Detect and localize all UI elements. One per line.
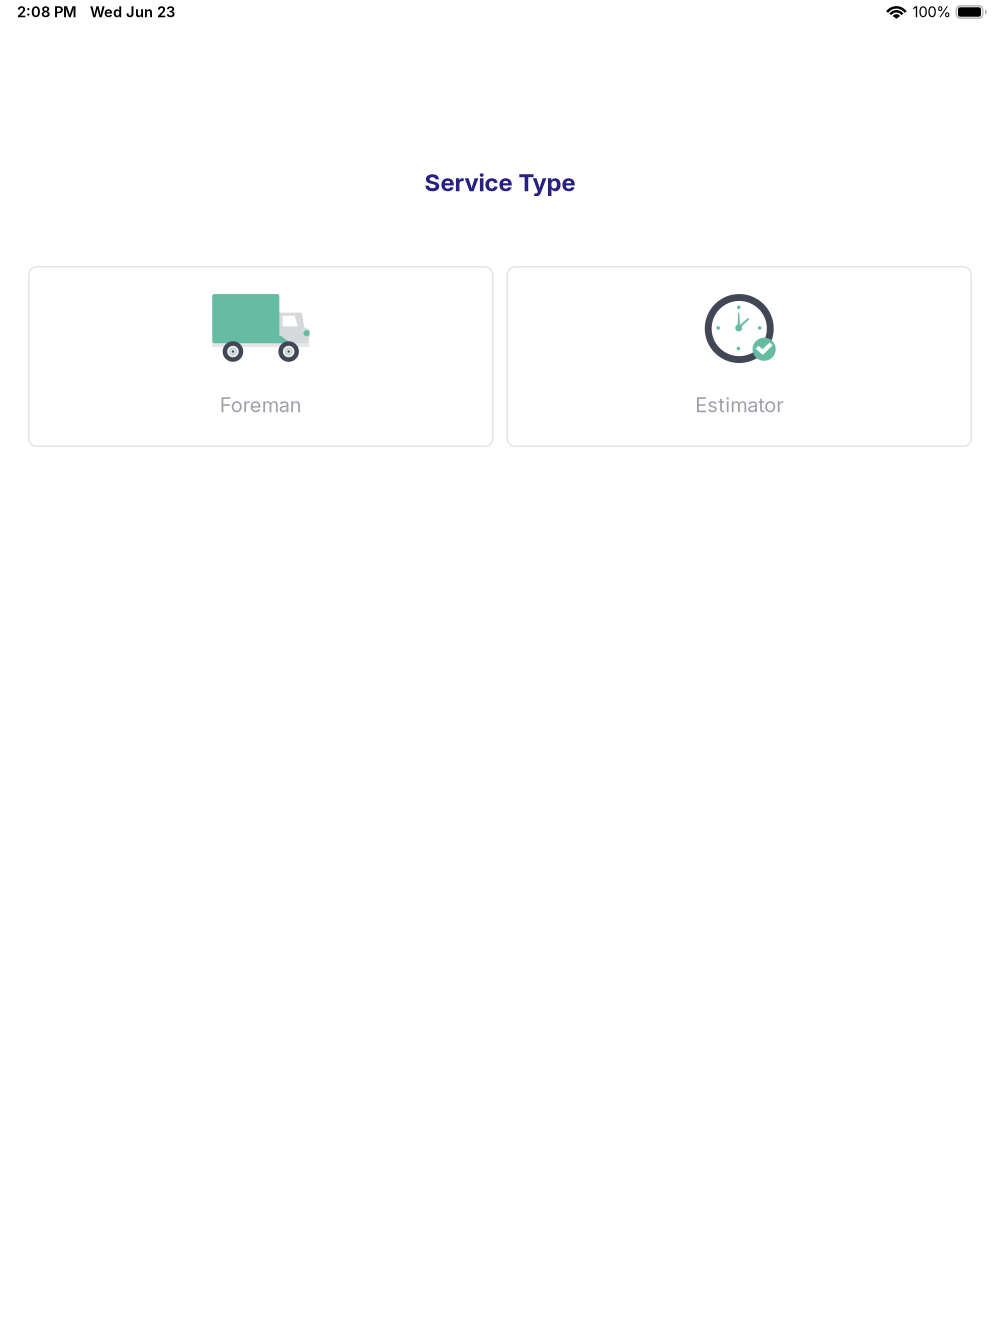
- staticText: Estimator: [695, 393, 783, 417]
- staticText: Foreman: [220, 393, 302, 417]
- staticText: 2:08 PM: [17, 3, 77, 21]
- button[interactable]: Estimator: [506, 266, 972, 447]
- staticText: Wed Jun 23: [90, 3, 175, 21]
- staticText: 100%: [912, 3, 950, 21]
- button[interactable]: Foreman: [28, 266, 493, 447]
- staticText: Service Type: [424, 168, 575, 197]
